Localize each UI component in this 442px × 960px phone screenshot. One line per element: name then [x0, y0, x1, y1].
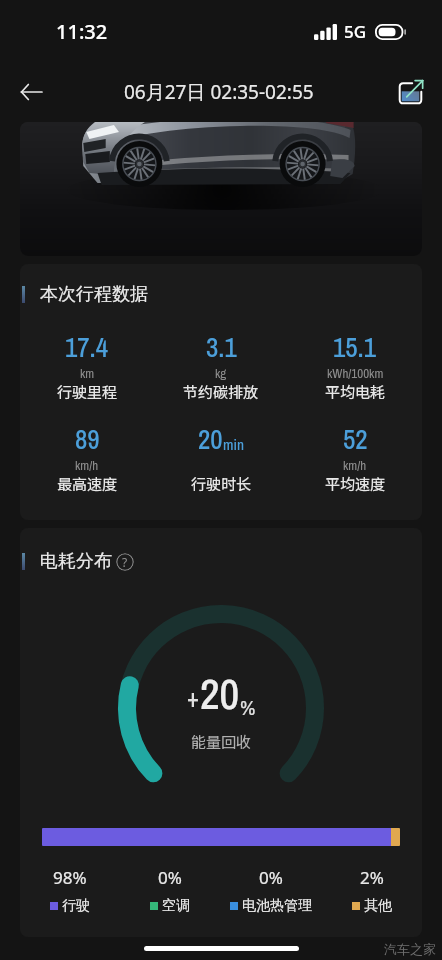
staticText: 空调	[162, 897, 190, 915]
staticText: 06月27日 02:35-02:55	[124, 79, 314, 105]
staticText: 电耗分布	[40, 550, 112, 573]
staticText: 20	[198, 421, 223, 457]
staticText: 最高速度	[57, 473, 118, 495]
staticText: 3.1	[206, 329, 237, 365]
button[interactable]: Back	[10, 71, 52, 113]
staticText: kWh/100km	[327, 365, 384, 383]
button[interactable]: Help	[116, 553, 134, 571]
staticText: 平均速度	[325, 473, 386, 495]
staticText: 5G	[344, 20, 367, 43]
staticText: +	[187, 681, 199, 715]
staticText: 行驶时长	[191, 473, 252, 495]
staticText: 行驶	[62, 897, 90, 915]
staticText: 能量回收	[191, 731, 252, 753]
staticText: 0%	[158, 866, 182, 889]
staticText: 52	[343, 421, 368, 457]
staticText: 15.1	[333, 329, 377, 365]
staticText: 17.4	[65, 329, 109, 365]
staticText: km/h	[75, 457, 99, 475]
staticText: km/h	[343, 457, 367, 475]
staticText: 11:32	[56, 18, 108, 45]
staticText: 行驶里程	[57, 381, 118, 403]
staticText: 节约碳排放	[183, 381, 259, 403]
staticText: 汽车之家	[384, 941, 436, 957]
staticText: 89	[75, 421, 100, 457]
staticText: 2%	[360, 866, 384, 889]
staticText: 平均电耗	[325, 381, 386, 403]
staticText: 电池热管理	[242, 897, 312, 915]
staticText: kg	[215, 365, 227, 383]
staticText: km	[80, 365, 95, 383]
staticText: 20	[200, 664, 240, 722]
staticText: ?	[122, 554, 128, 570]
staticText: %	[240, 693, 256, 721]
staticText: min	[223, 434, 244, 454]
button[interactable]: Share	[392, 74, 428, 110]
staticText: 98%	[53, 866, 87, 889]
staticText: 本次行程数据	[40, 283, 148, 306]
staticText: 其他	[364, 897, 392, 915]
staticText: 0%	[259, 866, 283, 889]
